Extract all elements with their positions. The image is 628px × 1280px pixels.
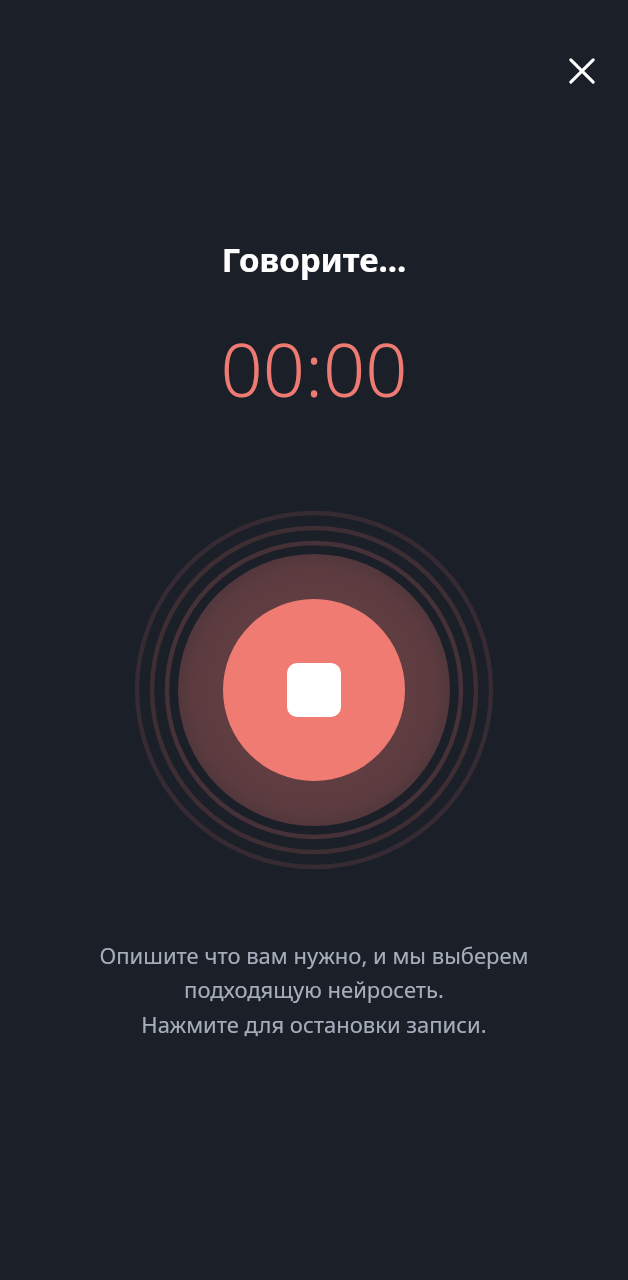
staticText: 00:00 (0, 318, 628, 419)
button[interactable]: Close (554, 43, 610, 99)
button[interactable]: Stop recording (129, 505, 499, 875)
staticText: Опишите что вам нужно, и мы выберем подх… (20, 940, 608, 1040)
staticText: Говорите... (0, 237, 628, 282)
